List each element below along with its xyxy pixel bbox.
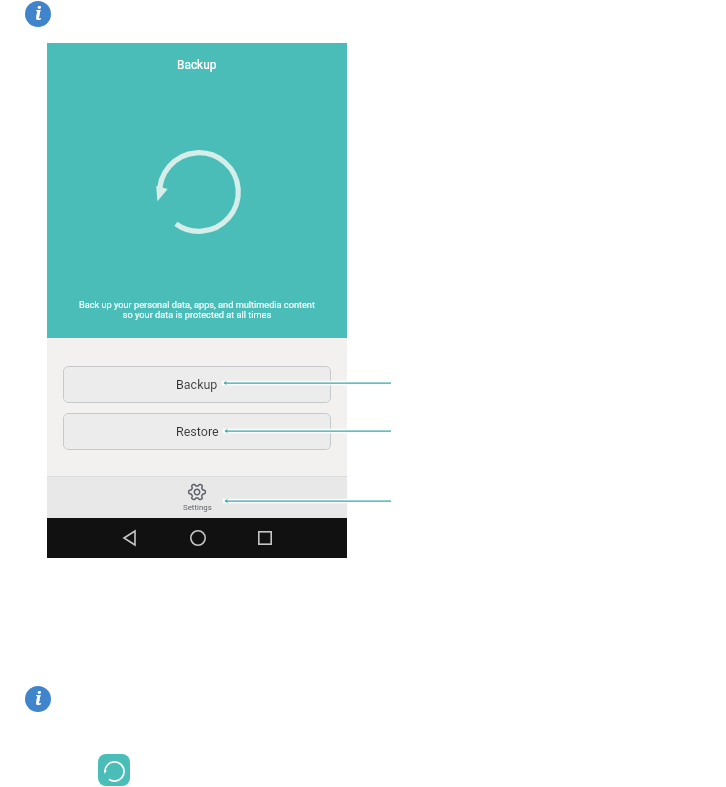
button[interactable]: Back — [115, 524, 143, 552]
button[interactable]: Backup — [63, 366, 331, 403]
staticText: Settings — [183, 503, 212, 512]
button[interactable]: Settings — [47, 476, 347, 518]
button[interactable]: Home — [184, 524, 212, 552]
staticText: Backup — [177, 58, 217, 72]
button[interactable]: Recents — [251, 524, 279, 552]
staticText: Backup — [176, 377, 218, 392]
button[interactable]: Restore — [63, 413, 331, 450]
staticText: i — [35, 1, 42, 26]
staticText: i — [35, 686, 42, 711]
staticText: Restore — [176, 424, 219, 439]
button[interactable]: Information — [25, 686, 51, 712]
button[interactable]: Information — [25, 1, 51, 27]
staticText: Back up your personal data, apps, and mu… — [47, 299, 347, 320]
